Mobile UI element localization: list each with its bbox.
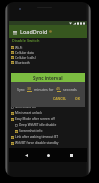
staticText: Link after waking timeout BT [15, 135, 59, 139]
button[interactable]: Cellular data [9, 50, 87, 55]
button[interactable]: Cellular (calls) [9, 55, 87, 60]
button[interactable]: Mini smart unlock [9, 110, 87, 116]
staticText: Wi-Fi [15, 46, 23, 50]
button[interactable]: Mini smart on [9, 104, 87, 110]
button[interactable]: Home [42, 149, 54, 161]
button[interactable]: Wifi/BT force disable standby [9, 140, 87, 146]
staticText: 45 [56, 86, 61, 91]
staticText: Sync interval [33, 75, 63, 81]
staticText: 30 [27, 86, 32, 91]
button[interactable]: Easy Mode after screen off [9, 116, 87, 122]
button[interactable]: CANCEL [52, 95, 68, 102]
staticText: seconds [63, 87, 77, 92]
button[interactable]: Wi-Fi [9, 45, 87, 50]
staticText: Screenshot info [19, 129, 43, 133]
staticText: Wifi/BT force disable standby [15, 141, 59, 145]
button[interactable]: Recent apps [65, 149, 77, 161]
button[interactable]: Navigation menu [11, 28, 19, 36]
staticText: Deep Wifi/BT idle disable [19, 123, 57, 127]
staticText: Sync [17, 87, 25, 92]
staticText: minutes for [34, 87, 54, 92]
staticText: LoadDroid [20, 28, 48, 35]
staticText: Bluetooth [15, 61, 30, 65]
button[interactable]: Deep Wifi/BT idle disable [9, 122, 87, 128]
staticText: Easy Mode after screen off [15, 117, 55, 121]
staticText: Mini smart unlock [15, 111, 42, 115]
staticText: Cellular data [15, 51, 34, 55]
staticText: Mini smart on [15, 105, 36, 109]
button[interactable]: Link after waking timeout BT [9, 134, 87, 140]
button[interactable]: Back [20, 149, 32, 161]
button[interactable]: Screenshot info [9, 128, 87, 134]
staticText: Disable Switch [12, 38, 40, 43]
button[interactable]: Bluetooth [9, 60, 87, 65]
staticText: Cellular (calls) [15, 56, 36, 60]
button[interactable]: OK [74, 95, 81, 102]
